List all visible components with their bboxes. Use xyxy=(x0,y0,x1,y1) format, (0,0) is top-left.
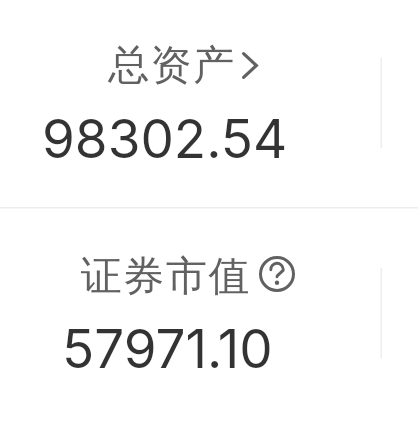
button[interactable]: 证券市值 xyxy=(0,208,418,447)
button[interactable]: 证券市值说明 xyxy=(259,256,295,292)
button[interactable]: 查看总资产详情 xyxy=(241,51,259,80)
staticText: 总资产 xyxy=(108,40,236,92)
staticText: 57971.10 xyxy=(62,317,273,381)
staticText: 98302.54 xyxy=(42,107,288,171)
button[interactable]: 总资产 xyxy=(0,0,418,207)
staticText: 证券市值 xyxy=(80,251,250,303)
